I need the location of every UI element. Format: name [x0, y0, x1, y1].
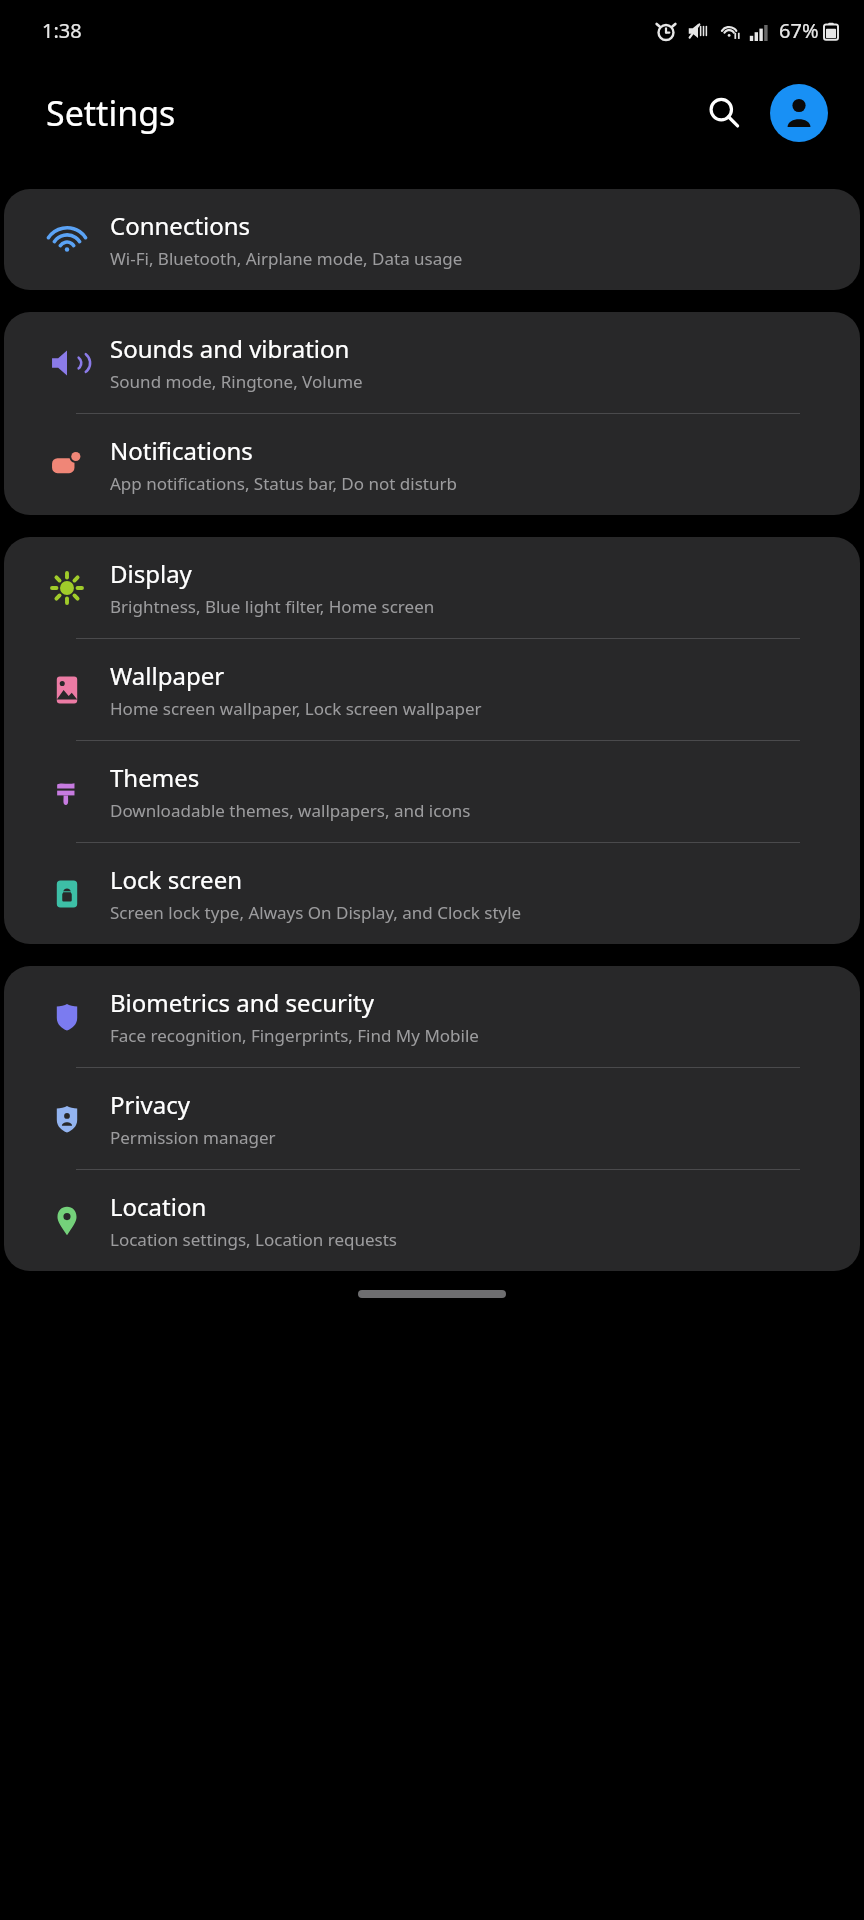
staticText: Lock screen: [110, 863, 243, 896]
staticText: Location: [110, 1190, 207, 1223]
button[interactable]: Location: [4, 1170, 860, 1271]
button[interactable]: Notifications: [4, 414, 860, 515]
staticText: App notifications, Status bar, Do not di…: [110, 472, 457, 495]
staticText: Notifications: [110, 434, 253, 467]
staticText: Themes: [110, 761, 200, 794]
staticText: Sounds and vibration: [110, 332, 350, 365]
staticText: Sound mode, Ringtone, Volume: [110, 370, 363, 393]
button[interactable]: Account: [770, 84, 828, 142]
button[interactable]: Sounds and vibration: [4, 312, 860, 414]
button[interactable]: Display: [4, 537, 860, 639]
button[interactable]: Privacy: [4, 1068, 860, 1170]
button[interactable]: Connections: [4, 189, 860, 290]
staticText: Wi-Fi, Bluetooth, Airplane mode, Data us…: [110, 247, 463, 270]
staticText: Display: [110, 557, 192, 590]
button[interactable]: Themes: [4, 741, 860, 843]
staticText: Permission manager: [110, 1126, 276, 1149]
staticText: Location settings, Location requests: [110, 1228, 397, 1251]
staticText: Wallpaper: [110, 659, 225, 692]
staticText: 67%: [779, 17, 819, 44]
staticText: Downloadable themes, wallpapers, and ico…: [110, 799, 471, 822]
staticText: Privacy: [110, 1088, 191, 1121]
button[interactable]: Search: [696, 85, 752, 141]
staticText: Settings: [46, 90, 176, 136]
staticText: Brightness, Blue light filter, Home scre…: [110, 595, 435, 618]
button[interactable]: Lock screen: [4, 843, 860, 944]
staticText: Face recognition, Fingerprints, Find My …: [110, 1024, 479, 1047]
staticText: Home screen wallpaper, Lock screen wallp…: [110, 697, 482, 720]
button[interactable]: Biometrics and security: [4, 966, 860, 1068]
button[interactable]: Wallpaper: [4, 639, 860, 741]
staticText: Biometrics and security: [110, 986, 374, 1019]
staticText: Screen lock type, Always On Display, and…: [110, 901, 522, 924]
staticText: Connections: [110, 209, 251, 242]
staticText: 1:38: [42, 17, 82, 44]
